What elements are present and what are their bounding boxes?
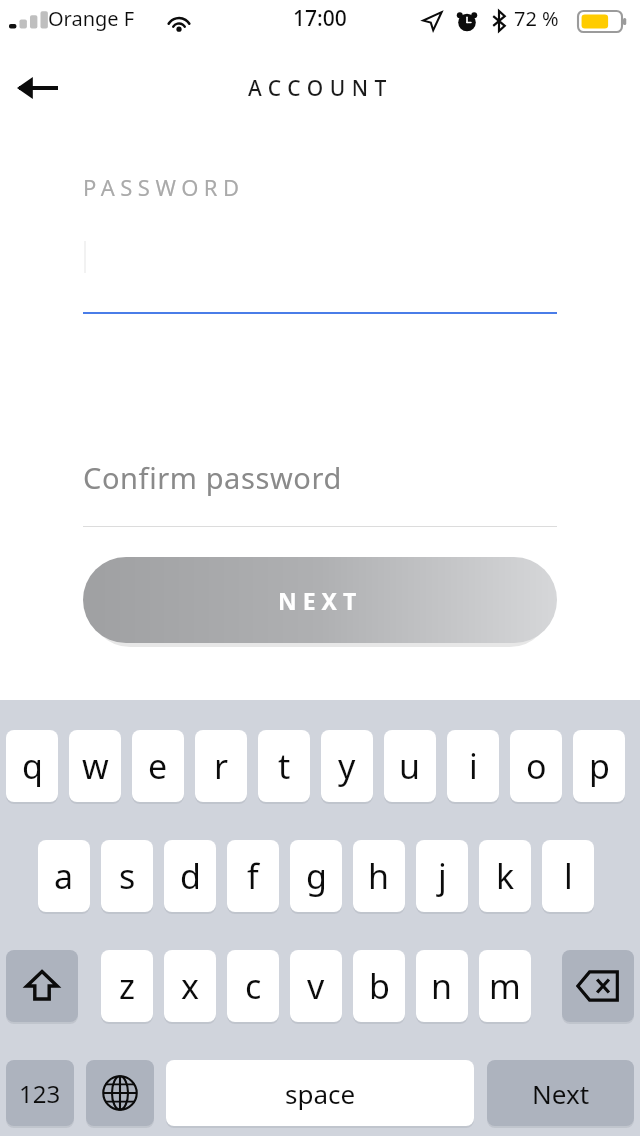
staticText: b [369, 963, 390, 1009]
staticText: y [338, 743, 356, 789]
button[interactable]: c [227, 950, 279, 1022]
staticText: w [82, 743, 109, 789]
button[interactable]: f [227, 840, 279, 912]
button[interactable]: e [132, 730, 184, 802]
staticText: o [526, 743, 547, 789]
button[interactable]: n [416, 950, 468, 1022]
button[interactable]: k [479, 840, 531, 912]
staticText: PASSWORD [83, 172, 245, 202]
button[interactable]: o [510, 730, 562, 802]
staticText: s [119, 853, 136, 899]
staticText: a [54, 853, 74, 899]
button[interactable]: m [479, 950, 531, 1022]
staticText: k [496, 853, 515, 899]
button[interactable]: Confirm password [83, 458, 342, 497]
button[interactable]: space [166, 1060, 474, 1126]
staticText: r [214, 743, 229, 789]
button[interactable]: i [447, 730, 499, 802]
staticText: n [431, 963, 453, 1009]
button[interactable]: l [542, 840, 594, 912]
staticText: NEXT [278, 585, 363, 616]
staticText: c [245, 963, 262, 1009]
button[interactable]: w [69, 730, 121, 802]
staticText: x [181, 963, 199, 1009]
staticText: p [589, 743, 610, 789]
staticText: d [180, 853, 201, 899]
button[interactable]: u [384, 730, 436, 802]
staticText: q [22, 743, 43, 789]
button[interactable]: Shift [6, 950, 78, 1022]
button[interactable]: z [101, 950, 153, 1022]
staticText: 123 [19, 1077, 61, 1110]
staticText: h [368, 853, 390, 899]
staticText: e [148, 743, 168, 789]
staticText: Orange F [48, 5, 135, 32]
staticText: j [438, 853, 447, 899]
button[interactable]: Next [487, 1060, 634, 1126]
staticText: Next [532, 1076, 590, 1111]
button[interactable]: b [353, 950, 405, 1022]
staticText: v [307, 963, 325, 1009]
button[interactable]: x [164, 950, 216, 1022]
staticText: m [489, 963, 521, 1009]
button[interactable]: s [101, 840, 153, 912]
button[interactable]: d [164, 840, 216, 912]
button[interactable]: Change keyboard [86, 1060, 154, 1126]
button[interactable]: a [38, 840, 90, 912]
button[interactable]: y [321, 730, 373, 802]
staticText: t [278, 743, 291, 789]
staticText: space [285, 1076, 356, 1111]
staticText: 17:00 [293, 4, 347, 33]
staticText: f [247, 853, 259, 899]
button[interactable]: p [573, 730, 625, 802]
button[interactable]: g [290, 840, 342, 912]
staticText: ACCOUNT [248, 74, 393, 103]
staticText: 72 % [514, 5, 559, 32]
staticText: z [119, 963, 135, 1009]
button[interactable]: Backspace [562, 950, 634, 1022]
button[interactable]: h [353, 840, 405, 912]
button[interactable]: r [195, 730, 247, 802]
staticText: g [306, 853, 327, 899]
button[interactable]: q [6, 730, 58, 802]
button[interactable]: v [290, 950, 342, 1022]
button[interactable]: NEXT [83, 557, 557, 643]
button[interactable]: t [258, 730, 310, 802]
staticText: u [399, 743, 421, 789]
button[interactable]: 123 [6, 1060, 74, 1126]
button[interactable]: j [416, 840, 468, 912]
staticText: l [564, 853, 573, 899]
staticText: i [469, 743, 478, 789]
button[interactable]: Back [4, 62, 70, 114]
